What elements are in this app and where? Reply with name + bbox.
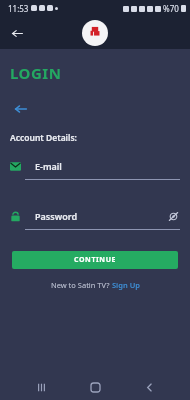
button[interactable]: Back — [136, 374, 162, 400]
staticText: Sign Up — [112, 280, 140, 290]
button[interactable]: Satin TV logo — [82, 20, 108, 46]
staticText: E-mail — [35, 160, 62, 172]
button[interactable]: Show password — [166, 209, 180, 223]
button[interactable]: Home — [82, 374, 108, 400]
staticText: %70 — [163, 3, 179, 14]
button[interactable]: Sign Up — [112, 280, 140, 290]
staticText: LOGIN — [10, 63, 62, 83]
button[interactable]: Password — [0, 209, 190, 223]
staticText: Account Details: — [10, 132, 77, 144]
button[interactable]: E-mail — [0, 159, 190, 173]
button[interactable]: CONTINUE — [12, 251, 178, 269]
button[interactable]: Go back — [10, 98, 32, 120]
staticText: New to Satin TV? — [51, 280, 112, 290]
button[interactable]: Back — [4, 20, 30, 46]
staticText: CONTINUE — [74, 255, 117, 265]
button[interactable]: Recent apps — [28, 374, 54, 400]
staticText: Password — [35, 210, 78, 222]
staticText: 11:53 — [8, 3, 29, 14]
